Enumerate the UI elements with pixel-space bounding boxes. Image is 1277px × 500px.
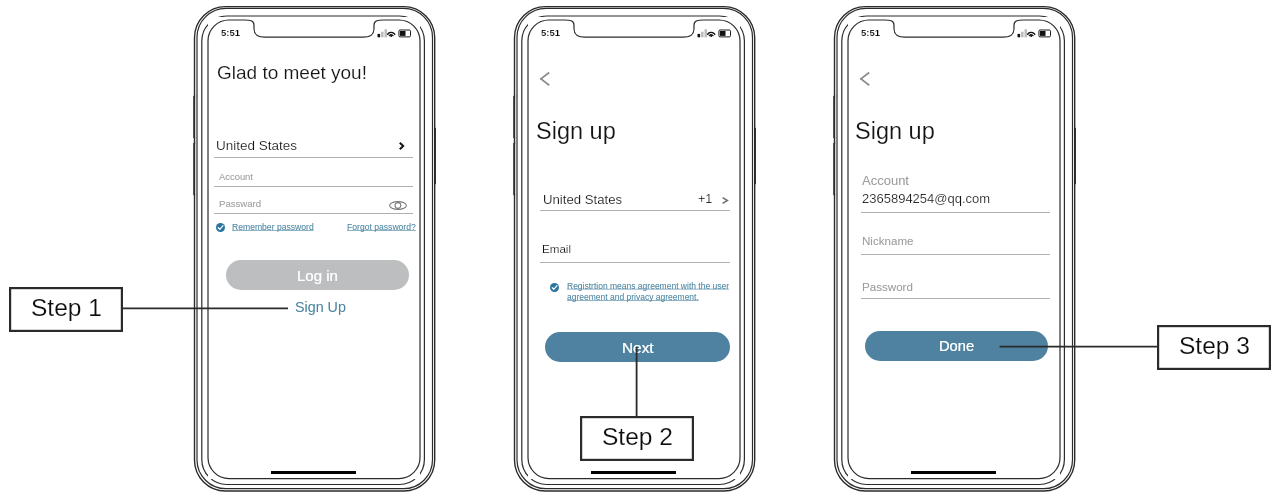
staticText: Glad to meet you! (217, 62, 367, 83)
staticText: Password (862, 280, 913, 293)
staticText: +1 (698, 192, 713, 206)
button[interactable]: Next (545, 332, 730, 362)
staticText: 5:51 (221, 27, 241, 38)
staticText: United States (543, 192, 623, 207)
staticText: Step 3 (1179, 332, 1250, 359)
button[interactable]: Step 1 (9, 287, 123, 332)
staticText: United States (216, 138, 298, 153)
button[interactable]: Sign Up (293, 297, 347, 317)
other: Show password (389, 201, 407, 210)
staticText: 5:51 (861, 27, 881, 38)
staticText: Email (542, 242, 571, 255)
button[interactable]: Back (857, 69, 873, 89)
staticText: Remember password (232, 222, 314, 232)
button[interactable]: Step 2 (580, 416, 694, 461)
staticText: Sign up (536, 118, 616, 144)
staticText: Account (862, 173, 909, 188)
staticText: 5:51 (541, 27, 561, 38)
staticText: Next (622, 339, 654, 356)
staticText: Step 2 (602, 423, 673, 450)
staticText: Registrtion means agreement with the use… (567, 281, 730, 302)
button[interactable]: Done (865, 331, 1048, 361)
staticText: Sign up (855, 118, 935, 144)
button[interactable]: Log in (226, 260, 409, 290)
staticText: Account (219, 171, 253, 182)
staticText: Step 1 (31, 294, 102, 321)
staticText: Forgot password? (347, 222, 416, 232)
staticText: 2365894254@qq.com (862, 191, 991, 206)
staticText: Sign Up (295, 299, 346, 315)
staticText: Log in (297, 267, 338, 284)
staticText: Nickname (862, 234, 914, 247)
staticText: Done (939, 338, 975, 354)
button[interactable]: Step 3 (1157, 325, 1271, 370)
button[interactable]: Back (537, 69, 553, 89)
staticText: Passward (219, 198, 262, 209)
